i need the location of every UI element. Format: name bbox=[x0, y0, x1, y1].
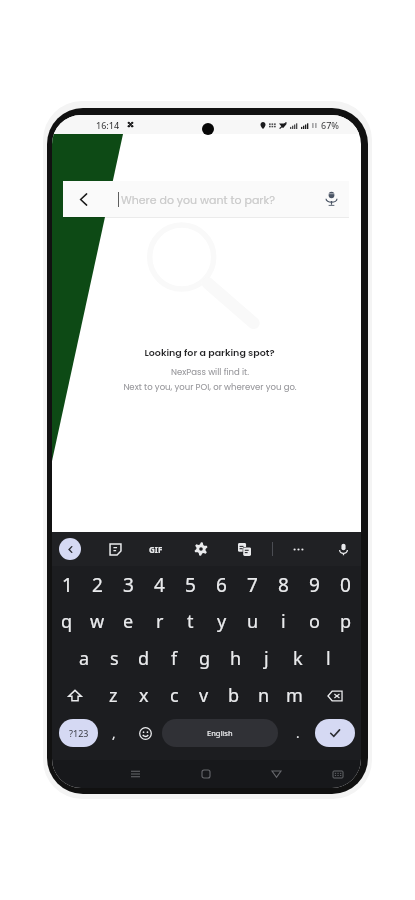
button[interactable]: u bbox=[237, 603, 268, 640]
staticText: k bbox=[293, 646, 303, 671]
button[interactable]: b bbox=[219, 677, 249, 714]
staticText: w bbox=[90, 609, 105, 634]
button[interactable]: Voice input bbox=[332, 538, 354, 560]
button[interactable]: j bbox=[251, 640, 282, 677]
button[interactable]: 0 bbox=[330, 566, 361, 603]
button[interactable]: d bbox=[129, 640, 159, 677]
button[interactable]: Back bbox=[63, 181, 349, 217]
staticText: 8 bbox=[278, 572, 289, 598]
staticText: d bbox=[138, 646, 150, 671]
button[interactable]: n bbox=[249, 677, 279, 714]
staticText: p bbox=[340, 609, 352, 634]
button[interactable]: ?123 bbox=[59, 719, 98, 747]
button[interactable]: Recents bbox=[122, 761, 148, 787]
button[interactable]: o bbox=[299, 603, 330, 640]
staticText: s bbox=[110, 646, 119, 671]
button[interactable]: Keyboard bbox=[325, 761, 351, 787]
button[interactable]: m bbox=[279, 677, 309, 714]
staticText: i bbox=[281, 609, 286, 634]
button[interactable]: 9 bbox=[299, 566, 330, 603]
staticText: y bbox=[217, 609, 227, 634]
button[interactable]: 5 bbox=[175, 566, 206, 603]
button[interactable]: Back bbox=[59, 538, 81, 560]
button[interactable]: s bbox=[99, 640, 129, 677]
staticText: z bbox=[109, 683, 118, 708]
button[interactable]: v bbox=[189, 677, 219, 714]
staticText: e bbox=[123, 609, 134, 634]
staticText: b bbox=[228, 683, 240, 708]
button[interactable]: Back bbox=[263, 761, 289, 787]
staticText: Next to you, your POI, or wherever you g… bbox=[123, 381, 297, 393]
staticText: 3 bbox=[123, 572, 134, 598]
button[interactable]: Home bbox=[193, 761, 219, 787]
staticText: c bbox=[170, 683, 179, 708]
button[interactable]: Voice search bbox=[313, 181, 349, 217]
staticText: n bbox=[258, 683, 270, 708]
button[interactable]: 4 bbox=[144, 566, 175, 603]
staticText: GIF bbox=[149, 544, 163, 555]
staticText: a bbox=[79, 646, 90, 671]
staticText: 9 bbox=[309, 572, 320, 598]
button[interactable]: 8 bbox=[268, 566, 299, 603]
staticText: r bbox=[156, 609, 164, 634]
staticText: 0 bbox=[340, 572, 351, 598]
staticText: o bbox=[309, 609, 320, 634]
staticText: Where do you want to park? bbox=[121, 192, 275, 207]
button[interactable]: . bbox=[286, 721, 310, 745]
button[interactable]: GIF bbox=[145, 538, 167, 560]
button[interactable]: w bbox=[82, 603, 113, 640]
staticText: 2 bbox=[92, 572, 103, 598]
staticText: f bbox=[171, 646, 178, 671]
staticText: v bbox=[199, 683, 209, 708]
button[interactable]: Enter bbox=[315, 719, 355, 747]
button[interactable]: 1 bbox=[52, 566, 82, 603]
button[interactable]: k bbox=[282, 640, 313, 677]
button[interactable]: t bbox=[175, 603, 206, 640]
button[interactable]: f bbox=[159, 640, 189, 677]
staticText: . bbox=[296, 724, 300, 742]
button[interactable]: Emoji bbox=[133, 721, 157, 745]
button[interactable]: , bbox=[102, 721, 126, 745]
button[interactable]: Backspace bbox=[309, 677, 361, 714]
staticText: 5 bbox=[185, 572, 196, 598]
staticText: 7 bbox=[247, 572, 258, 598]
staticText: 67% bbox=[321, 119, 339, 131]
button[interactable]: Shift bbox=[52, 677, 98, 714]
staticText: , bbox=[112, 724, 116, 742]
button[interactable]: Stickers bbox=[104, 538, 126, 560]
button[interactable]: Translate bbox=[233, 538, 255, 560]
staticText: Looking for a parking spot? bbox=[144, 346, 275, 359]
staticText: NexPass will find it. bbox=[171, 366, 249, 378]
staticText: t bbox=[187, 609, 194, 634]
button[interactable]: q bbox=[52, 603, 82, 640]
button[interactable]: x bbox=[129, 677, 159, 714]
button[interactable]: c bbox=[159, 677, 189, 714]
button[interactable]: e bbox=[113, 603, 144, 640]
button[interactable]: a bbox=[69, 640, 99, 677]
button[interactable]: 2 bbox=[82, 566, 113, 603]
staticText: 6 bbox=[216, 572, 227, 598]
staticText: j bbox=[264, 646, 269, 671]
staticText: g bbox=[199, 646, 211, 671]
button[interactable]: 3 bbox=[113, 566, 144, 603]
staticText: 16:14 bbox=[96, 119, 120, 131]
button[interactable]: y bbox=[206, 603, 237, 640]
button[interactable]: Back bbox=[63, 181, 103, 217]
button[interactable]: More options bbox=[287, 538, 309, 560]
button[interactable]: z bbox=[98, 677, 129, 714]
button[interactable]: l bbox=[313, 640, 344, 677]
staticText: h bbox=[230, 646, 242, 671]
staticText: m bbox=[286, 683, 303, 708]
button[interactable]: 7 bbox=[237, 566, 268, 603]
button[interactable]: Settings bbox=[190, 538, 212, 560]
button[interactable]: 6 bbox=[206, 566, 237, 603]
staticText: ?123 bbox=[69, 727, 89, 739]
button[interactable]: English bbox=[162, 719, 278, 747]
button[interactable]: r bbox=[144, 603, 175, 640]
button[interactable]: h bbox=[220, 640, 251, 677]
staticText: 4 bbox=[154, 572, 165, 598]
button[interactable]: g bbox=[189, 640, 220, 677]
button[interactable]: i bbox=[268, 603, 299, 640]
staticText: q bbox=[61, 609, 73, 634]
button[interactable]: p bbox=[330, 603, 361, 640]
